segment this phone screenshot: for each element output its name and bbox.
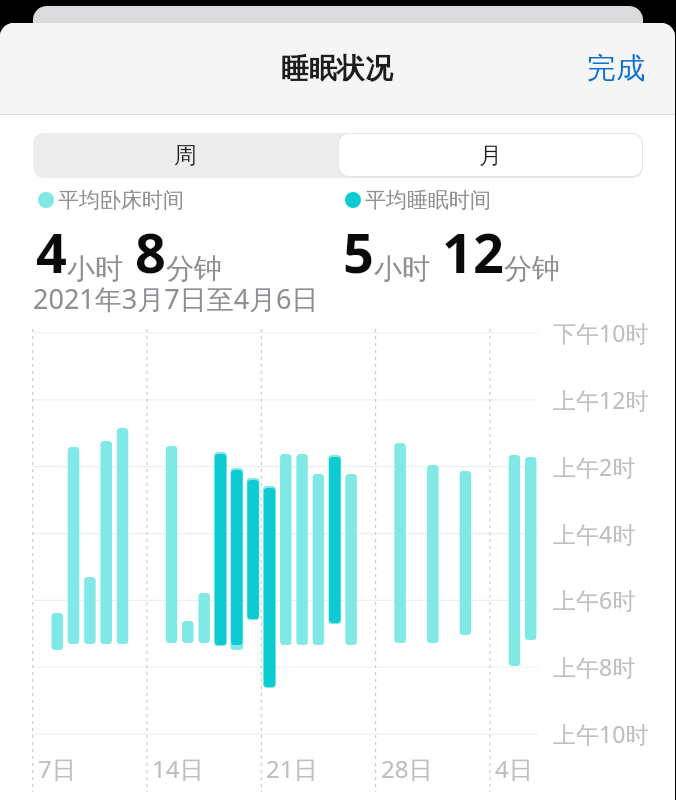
button[interactable]: 周 — [33, 133, 338, 178]
staticText: 上午2时 — [553, 451, 636, 482]
staticText: 上午10时 — [553, 718, 649, 749]
staticText: 完成 — [587, 50, 645, 87]
staticText: 4日 — [495, 752, 533, 785]
button[interactable]: 完成 — [577, 44, 655, 93]
staticText: 上午6时 — [553, 584, 636, 615]
staticText: 平均卧床时间 — [58, 187, 184, 213]
staticText: 14日 — [152, 752, 204, 785]
staticText: 小时 — [374, 251, 430, 286]
staticText: 5 — [343, 215, 374, 289]
staticText: 月 — [479, 141, 502, 170]
staticText: 7日 — [38, 752, 76, 785]
staticText: 分钟 — [166, 251, 222, 286]
staticText: 4 — [36, 215, 67, 289]
staticText: 下午10时 — [553, 317, 649, 348]
staticText: 小时 — [67, 251, 123, 286]
staticText: 上午8时 — [553, 651, 636, 682]
staticText: 上午4时 — [553, 518, 636, 549]
staticText: 2021年3月7日至4月6日 — [33, 280, 319, 317]
staticText: 平均睡眠时间 — [365, 187, 491, 213]
staticText: 分钟 — [504, 251, 560, 286]
staticText: 28日 — [381, 752, 433, 785]
staticText: 上午12时 — [553, 384, 649, 415]
staticText: 21日 — [266, 752, 318, 785]
staticText: 12 — [442, 215, 504, 289]
button[interactable]: 月 — [339, 134, 642, 176]
staticText: 周 — [174, 141, 197, 170]
staticText: 睡眠状况 — [281, 51, 393, 86]
staticText: 8 — [135, 215, 166, 289]
